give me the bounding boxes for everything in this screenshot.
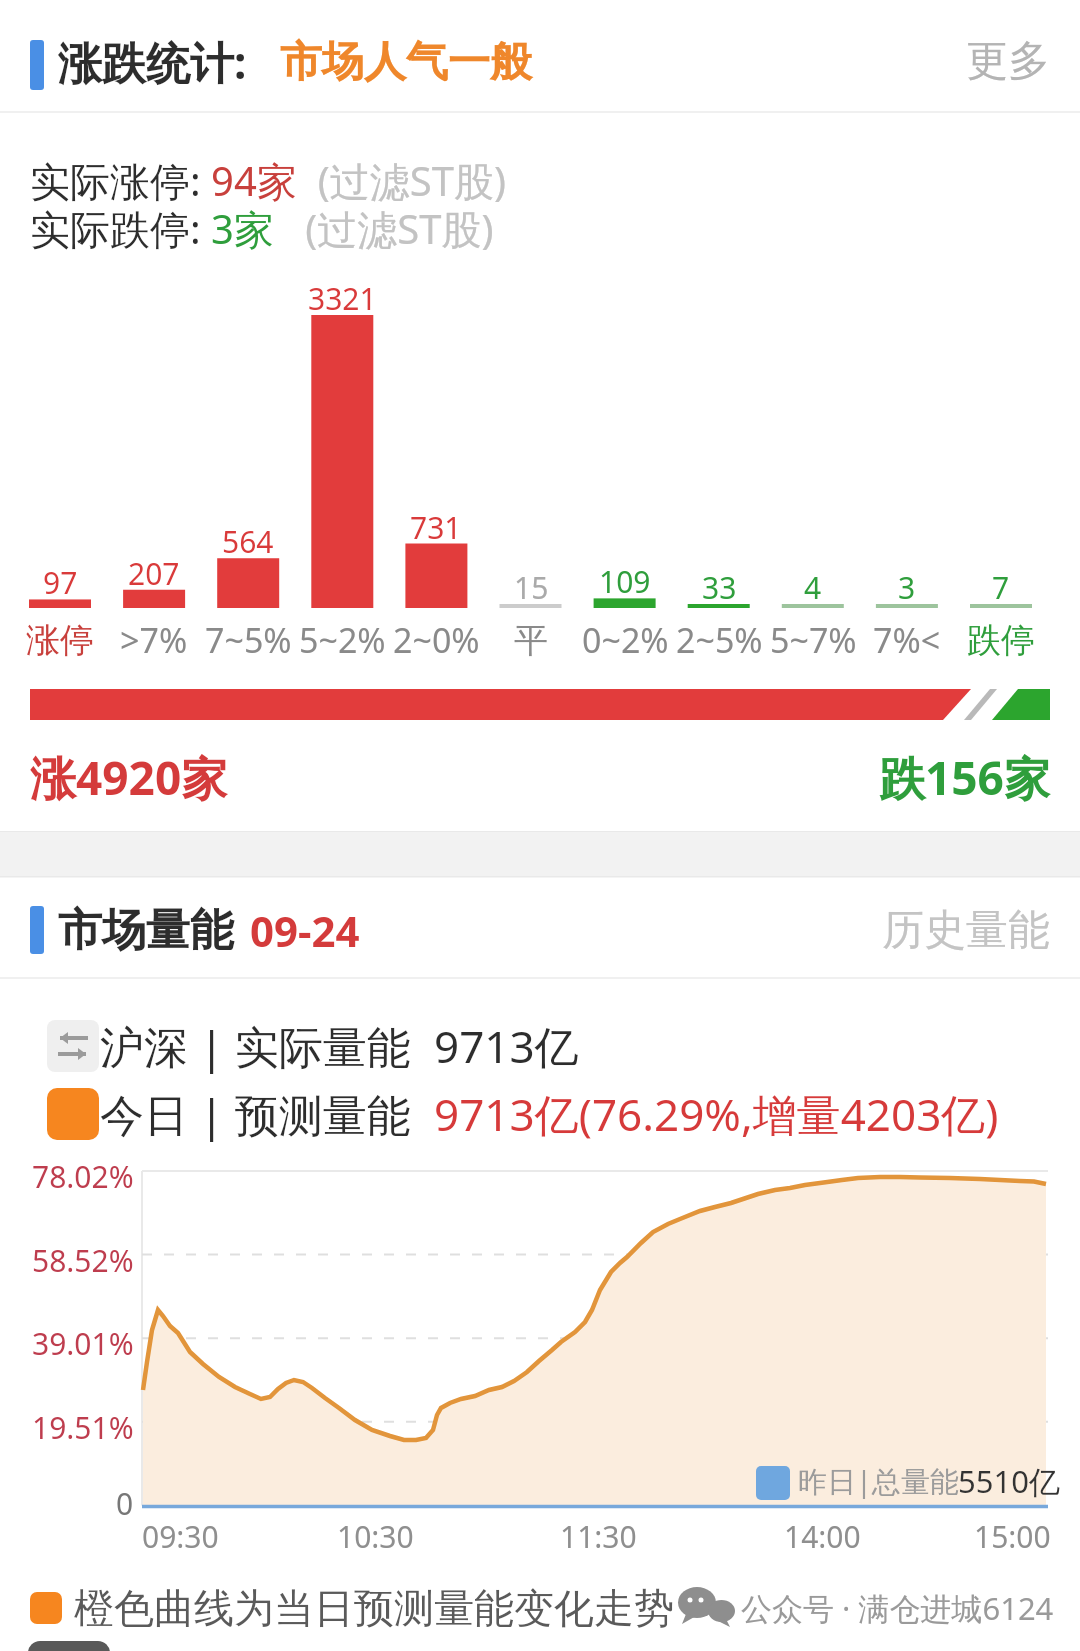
staticText: 19.51% xyxy=(32,1407,134,1448)
staticText: 5~7% xyxy=(770,617,857,663)
staticText: 橙色曲线为当日预测量能变化走势 xyxy=(74,1583,674,1633)
staticText: 0 xyxy=(116,1483,134,1524)
staticText: 14:00 xyxy=(784,1516,861,1557)
staticText: 15 xyxy=(514,567,549,608)
staticText: 58.52% xyxy=(32,1240,134,1281)
staticText: 78.02% xyxy=(32,1156,134,1197)
staticText: 207 xyxy=(128,553,180,594)
staticText: 731 xyxy=(410,507,462,548)
staticText: 10:30 xyxy=(337,1516,414,1557)
staticText: 涨停 xyxy=(26,619,94,662)
staticText: 7%< xyxy=(873,617,941,663)
staticText: 涨跌统计: xyxy=(58,32,247,92)
staticText: 更多 xyxy=(966,35,1050,88)
button[interactable]: 更多 xyxy=(890,29,1050,93)
staticText: 5~2% xyxy=(299,617,386,663)
staticText: 33 xyxy=(702,567,737,608)
staticText: 3321 xyxy=(308,278,377,319)
staticText: 97 xyxy=(43,562,78,603)
staticText: 沪深 | 实际量能 9713亿 xyxy=(100,1016,579,1076)
staticText: 公众号 · 满仓进城6124 xyxy=(741,1587,1054,1629)
staticText: 0~2% xyxy=(582,617,669,663)
staticText: 15:00 xyxy=(974,1516,1051,1557)
staticText: 实际涨停: 94家 (过滤ST股) xyxy=(30,153,506,208)
staticText: 市场量能 xyxy=(58,903,234,958)
staticText: 2~5% xyxy=(676,617,763,663)
staticText: >7% xyxy=(120,617,188,663)
staticText: 2~0% xyxy=(393,617,480,663)
staticText: 39.01% xyxy=(32,1323,134,1364)
staticText: 5510亿 xyxy=(958,1460,1060,1502)
staticText: 昨日|总量能 xyxy=(798,1461,959,1501)
staticText: 实际跌停: 3家 (过滤ST股) xyxy=(30,201,494,256)
button[interactable]: 历史量能 xyxy=(810,898,1050,962)
staticText: 564 xyxy=(222,521,274,562)
staticText: 109 xyxy=(599,561,651,602)
staticText: 4 xyxy=(804,567,822,608)
staticText: 跌156家 xyxy=(879,746,1050,809)
staticText: 涨4920家 xyxy=(30,746,228,809)
staticText: 7~5% xyxy=(205,617,292,663)
staticText: 09-24 xyxy=(250,902,360,959)
staticText: 7 xyxy=(992,567,1010,608)
staticText: 09:30 xyxy=(142,1516,219,1557)
staticText: 3 xyxy=(898,567,916,608)
staticText: 市场人气一般 xyxy=(280,36,532,89)
staticText: 今日 | 预测量能 9713亿(76.29%,增量4203亿) xyxy=(100,1084,999,1144)
staticText: 跌停 xyxy=(967,619,1035,662)
staticText: 平 xyxy=(514,619,548,662)
staticText: 历史量能 xyxy=(882,904,1050,957)
staticText: 11:30 xyxy=(560,1516,637,1557)
